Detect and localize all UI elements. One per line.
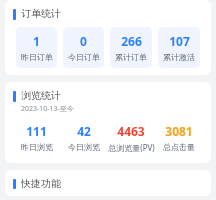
staticText: 4463 xyxy=(117,123,145,139)
staticText: 累计订单 xyxy=(115,52,147,62)
staticText: 总点击量 xyxy=(163,142,195,152)
button[interactable]: 111 xyxy=(13,120,60,155)
staticText: 0 xyxy=(80,33,87,49)
button[interactable]: 42 xyxy=(60,120,107,155)
button[interactable]: 0 xyxy=(63,27,104,68)
staticText: 1 xyxy=(33,33,40,49)
staticText: 2023-10-13-至今 xyxy=(21,104,74,114)
staticText: 111 xyxy=(26,123,47,139)
staticText: 3081 xyxy=(165,123,193,139)
button[interactable]: 1 xyxy=(16,27,57,68)
staticText: 订单统计 xyxy=(21,7,61,20)
staticText: 昨日浏览 xyxy=(21,142,53,152)
button[interactable]: 107 xyxy=(158,27,200,68)
staticText: 总浏览量(PV) xyxy=(108,142,155,153)
staticText: 今日浏览 xyxy=(68,142,100,152)
staticText: 浏览统计 xyxy=(21,89,61,102)
button[interactable]: 266 xyxy=(110,27,152,68)
staticText: 266 xyxy=(121,33,142,49)
staticText: 昨日订单 xyxy=(21,52,53,62)
staticText: 42 xyxy=(77,123,91,139)
staticText: 累计激活 xyxy=(163,52,195,62)
staticText: 今日订单 xyxy=(68,52,100,62)
staticText: 快捷功能 xyxy=(21,177,61,189)
button[interactable]: 4463 xyxy=(107,120,155,156)
staticText: 107 xyxy=(169,33,190,49)
button[interactable]: 3081 xyxy=(155,120,203,155)
